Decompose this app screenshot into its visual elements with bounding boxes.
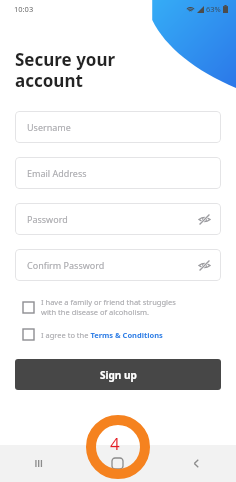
button[interactable]: Username	[15, 111, 221, 143]
staticText: 10:03	[14, 4, 34, 14]
staticText: Username	[27, 121, 71, 133]
button[interactable]: Sign up	[15, 359, 221, 390]
staticText: 4	[110, 432, 120, 455]
button[interactable]: Recents	[0, 445, 78, 482]
button[interactable]: Show password	[197, 212, 211, 226]
button[interactable]: Back	[157, 445, 236, 482]
staticText: 63%	[206, 4, 221, 14]
button[interactable]: I have a family or friend that struggles…	[15, 297, 221, 317]
button[interactable]: Email Address	[15, 157, 221, 189]
button[interactable]: I agree to the Terms & Conditions	[15, 329, 221, 340]
staticText: Password	[27, 213, 68, 225]
staticText: Confirm Password	[27, 259, 105, 271]
staticText: I have a family or friend that struggles…	[41, 297, 176, 317]
staticText: Secure your account	[15, 48, 116, 92]
button[interactable]: Home	[78, 445, 157, 482]
staticText: I agree to the Terms & Conditions	[41, 330, 163, 340]
staticText: Email Address	[27, 167, 87, 179]
button[interactable]: Password	[15, 203, 221, 235]
button[interactable]: Confirm Password	[15, 249, 221, 281]
button[interactable]: Show password	[197, 258, 211, 272]
staticText: Sign up	[100, 368, 137, 382]
